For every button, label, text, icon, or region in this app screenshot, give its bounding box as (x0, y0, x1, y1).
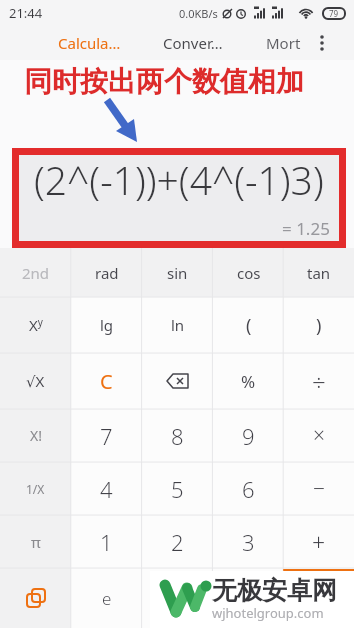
button[interactable] (142, 568, 213, 628)
staticText: = 1.25 (282, 217, 330, 240)
button[interactable] (213, 568, 284, 628)
button[interactable]: ÷ (284, 353, 354, 409)
staticText: Xy (29, 315, 43, 335)
button[interactable]: 5 (142, 462, 213, 515)
staticText: 2nd (22, 263, 50, 283)
button[interactable]: 6 (213, 462, 284, 515)
button[interactable]: Mort (266, 25, 301, 60)
staticText: 4 (100, 474, 113, 504)
button[interactable]: − (284, 462, 354, 515)
button[interactable]: Xy (0, 297, 71, 353)
button[interactable]: Calcula… (58, 25, 121, 60)
button[interactable]: 7 (71, 409, 142, 462)
button[interactable]: + (284, 515, 354, 568)
button[interactable]: 4 (71, 462, 142, 515)
button[interactable]: π (0, 515, 71, 568)
staticText: × (313, 421, 325, 450)
staticText: C (100, 368, 113, 395)
button[interactable]: 2nd (0, 248, 71, 297)
staticText: 3 (242, 527, 255, 557)
staticText: cos (237, 263, 261, 283)
button[interactable]: ln (142, 297, 213, 353)
button[interactable]: ( (213, 297, 284, 353)
staticText: sin (167, 263, 188, 283)
staticText: + (312, 526, 326, 557)
staticText: X! (30, 426, 42, 445)
staticText: 无极安卓网 (212, 575, 337, 606)
staticText: 2 (171, 527, 184, 557)
staticText: ) (316, 313, 322, 338)
staticText: % (241, 370, 256, 393)
button[interactable]: ) (284, 297, 354, 353)
button[interactable] (0, 568, 71, 628)
staticText: − (313, 474, 325, 503)
button[interactable]: rad (71, 248, 142, 297)
staticText: π (31, 532, 41, 552)
staticText: Mort (266, 33, 301, 53)
button[interactable]: 1/X (0, 462, 71, 515)
staticText: 0.0KB/s (179, 6, 218, 21)
staticText: 5 (171, 474, 184, 504)
staticText: ln (171, 315, 185, 335)
button[interactable]: 1 (71, 515, 142, 568)
button[interactable]: × (284, 409, 354, 462)
staticText: 1/X (26, 481, 45, 497)
staticText: 79 (329, 8, 339, 19)
button[interactable] (284, 568, 354, 628)
button[interactable]: 2 (142, 515, 213, 568)
button[interactable]: % (213, 353, 284, 409)
staticText: e (102, 587, 112, 610)
button[interactable]: X! (0, 409, 71, 462)
button[interactable] (142, 353, 213, 409)
button[interactable]: e (71, 568, 142, 628)
staticText: ÷ (312, 365, 326, 398)
button[interactable]: Conver… (163, 25, 223, 60)
staticText: (2^(-1))+(4^(-1)3) (34, 153, 324, 206)
staticText: 同时按出两个数值相加 (24, 64, 304, 99)
staticText: 21:44 (9, 4, 43, 22)
button[interactable]: 3 (213, 515, 284, 568)
staticText: Calcula… (58, 33, 121, 53)
staticText: 1 (100, 527, 113, 557)
staticText: rad (95, 263, 119, 283)
staticText: 6 (242, 474, 255, 504)
staticText: lg (100, 315, 114, 335)
staticText: 7 (100, 421, 113, 451)
button[interactable]: √X (0, 353, 71, 409)
staticText: Conver… (163, 33, 223, 53)
button[interactable]: 9 (213, 409, 284, 462)
button[interactable]: lg (71, 297, 142, 353)
button[interactable]: C (71, 353, 142, 409)
staticText: wjhotelgroup.com (212, 604, 324, 622)
staticText: tan (307, 263, 331, 283)
button[interactable]: tan (284, 248, 354, 297)
button[interactable]: cos (213, 248, 284, 297)
button[interactable] (312, 25, 332, 60)
staticText: 9 (242, 421, 255, 451)
staticText: 8 (171, 421, 184, 451)
staticText: √X (26, 371, 45, 391)
button[interactable]: 8 (142, 409, 213, 462)
staticText: ( (246, 313, 252, 338)
button[interactable]: sin (142, 248, 213, 297)
